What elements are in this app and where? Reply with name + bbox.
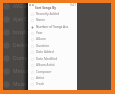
button[interactable]: Recently Added [28, 11, 77, 17]
button[interactable]: Ajax Down [3, 13, 111, 26]
staticText: Artist [36, 76, 45, 80]
staticText: Name [36, 18, 45, 22]
staticText: Sort Songs By [35, 6, 56, 10]
button[interactable]: Album Artist [28, 62, 77, 68]
staticText: Recently Added [36, 12, 60, 16]
staticText: Device In [13, 42, 35, 49]
staticText: Track [36, 82, 44, 86]
staticText: 9:41 [70, 3, 76, 6]
button[interactable]: Track [28, 81, 77, 87]
button[interactable]: Year [28, 30, 77, 36]
staticText: Number of Songs Asc [36, 25, 69, 29]
button[interactable]: Duration [28, 43, 77, 49]
staticText: Album Artist [36, 63, 55, 67]
button[interactable]: Device In [3, 39, 111, 52]
staticText: AVG AntiVi [13, 3, 38, 10]
button[interactable]: Artist [28, 75, 77, 81]
staticText: busybox [13, 29, 33, 36]
staticText: Date Modified [36, 57, 58, 61]
staticText: Messages [13, 68, 37, 75]
button[interactable]: Name [28, 17, 77, 23]
button[interactable]: Date Modified [28, 56, 77, 62]
staticText: Music [13, 81, 27, 88]
button[interactable]: Date Added [28, 49, 77, 55]
button[interactable]: Album [28, 36, 77, 42]
button[interactable]: Messages [3, 65, 111, 78]
button[interactable]: Music [3, 78, 111, 91]
button[interactable]: Composer [28, 69, 77, 75]
button[interactable]: AVG AntiVi [3, 0, 111, 13]
button[interactable]: Number of Songs Asc [28, 24, 77, 30]
staticText: Year [36, 31, 43, 35]
button[interactable]: Dumpster [3, 52, 111, 65]
staticText: Album [36, 37, 46, 41]
staticText: Composer [36, 70, 52, 74]
staticText: Dumpster [13, 55, 37, 62]
staticText: Date Added [36, 50, 54, 54]
staticText: Duration [36, 44, 50, 48]
button[interactable]: busybox [3, 26, 111, 39]
staticText: Ajax Down [13, 16, 38, 23]
